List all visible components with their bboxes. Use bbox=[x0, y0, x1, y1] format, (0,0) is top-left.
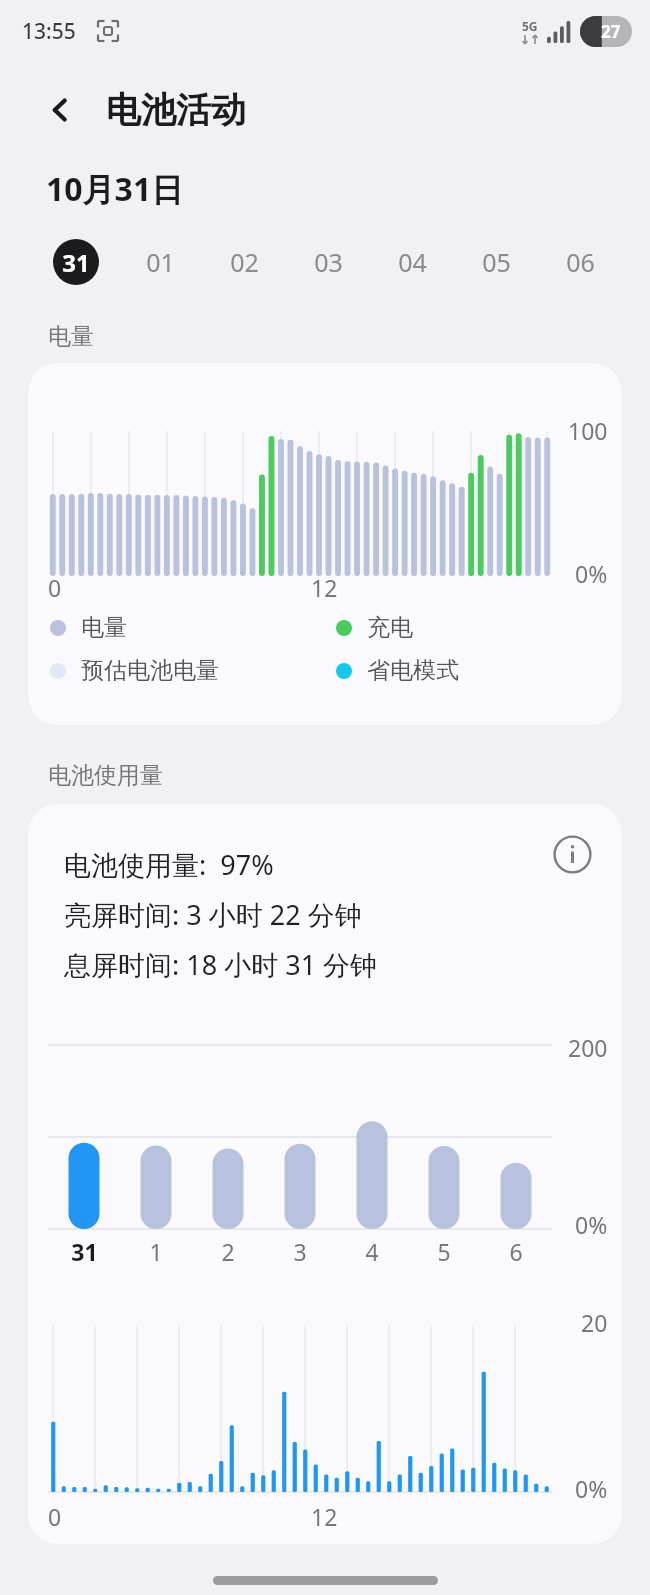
staticText: 0 bbox=[48, 1501, 62, 1532]
staticText: 13:55 bbox=[22, 17, 76, 46]
staticText: 电池活动 bbox=[106, 88, 246, 132]
staticText: 31 bbox=[71, 1236, 98, 1267]
button[interactable]: 02 bbox=[202, 220, 286, 304]
button[interactable]: Back bbox=[34, 84, 86, 136]
staticText: 电池使用量: 97% bbox=[64, 846, 274, 883]
button[interactable]: 03 bbox=[286, 220, 370, 304]
staticText: 100 bbox=[568, 415, 608, 446]
staticText: 200 bbox=[568, 1032, 608, 1063]
staticText: 0% bbox=[575, 1473, 608, 1504]
staticText: 电池使用量 bbox=[48, 761, 163, 790]
staticText: 充电 bbox=[367, 613, 413, 642]
staticText: 01 bbox=[146, 245, 175, 279]
staticText: 0 bbox=[48, 572, 62, 603]
button[interactable]: 06 bbox=[538, 220, 622, 304]
button[interactable]: Info bbox=[548, 830, 596, 878]
staticText: 亮屏时间: 3 小时 22 分钟 bbox=[64, 896, 362, 933]
staticText: 06 bbox=[566, 245, 595, 279]
staticText: 4 bbox=[365, 1236, 379, 1267]
button[interactable]: Info bbox=[28, 804, 622, 1544]
button[interactable]: 100 bbox=[28, 363, 622, 725]
staticText: 12 bbox=[311, 1501, 338, 1532]
staticText: 3 bbox=[293, 1236, 307, 1267]
button[interactable]: 31 bbox=[34, 220, 118, 304]
staticText: 0% bbox=[575, 1209, 608, 1240]
staticText: 20 bbox=[581, 1307, 608, 1338]
staticText: 12 bbox=[311, 572, 338, 603]
button[interactable]: 05 bbox=[454, 220, 538, 304]
staticText: 电量 bbox=[48, 322, 94, 351]
button[interactable]: 04 bbox=[370, 220, 454, 304]
staticText: 1 bbox=[149, 1236, 163, 1267]
staticText: 0% bbox=[575, 558, 608, 589]
staticText: 5 bbox=[437, 1236, 451, 1267]
staticText: 6 bbox=[509, 1236, 523, 1267]
staticText: 04 bbox=[398, 245, 427, 279]
staticText: 预估电池电量 bbox=[81, 656, 219, 685]
staticText: 02 bbox=[230, 245, 259, 279]
staticText: 省电模式 bbox=[367, 656, 459, 685]
staticText: 27 bbox=[601, 20, 621, 43]
staticText: 5G bbox=[522, 18, 538, 34]
staticText: 05 bbox=[482, 245, 511, 279]
staticText: 31 bbox=[62, 246, 90, 279]
staticText: 10月31日 bbox=[46, 167, 184, 211]
staticText: 电量 bbox=[81, 613, 127, 642]
staticText: 息屏时间: 18 小时 31 分钟 bbox=[64, 946, 378, 983]
button[interactable]: 01 bbox=[118, 220, 202, 304]
staticText: 03 bbox=[314, 245, 343, 279]
staticText: 2 bbox=[221, 1236, 235, 1267]
